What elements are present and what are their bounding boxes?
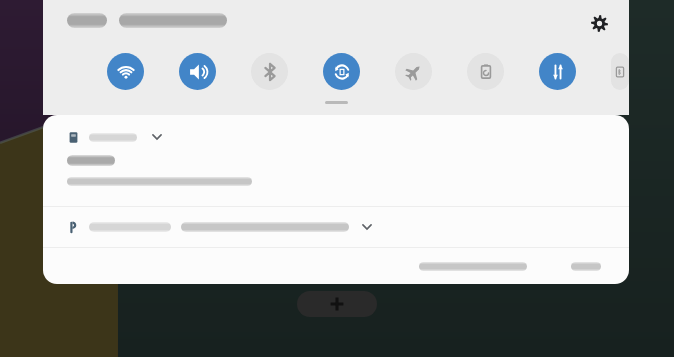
button[interactable]: Wi-Fi <box>107 53 144 90</box>
button[interactable]: Expand <box>43 207 629 247</box>
button[interactable]: Mobile data <box>539 53 576 90</box>
button[interactable]: Bluetooth <box>251 53 288 90</box>
button[interactable]: Expand <box>359 219 375 235</box>
button[interactable]: Battery Saver <box>467 53 504 90</box>
button[interactable]: Auto-rotate <box>323 53 360 90</box>
button[interactable]: Settings <box>584 8 614 38</box>
button[interactable]: Notification settings <box>409 256 537 277</box>
button[interactable]: Clear all <box>561 256 611 277</box>
button[interactable]: Add <box>297 291 377 317</box>
button[interactable]: Sound <box>179 53 216 90</box>
button[interactable]: Expand <box>149 129 165 145</box>
button[interactable]: Battery <box>611 53 629 90</box>
button[interactable]: Expand <box>43 115 629 206</box>
button[interactable]: Airplane mode <box>395 53 432 90</box>
